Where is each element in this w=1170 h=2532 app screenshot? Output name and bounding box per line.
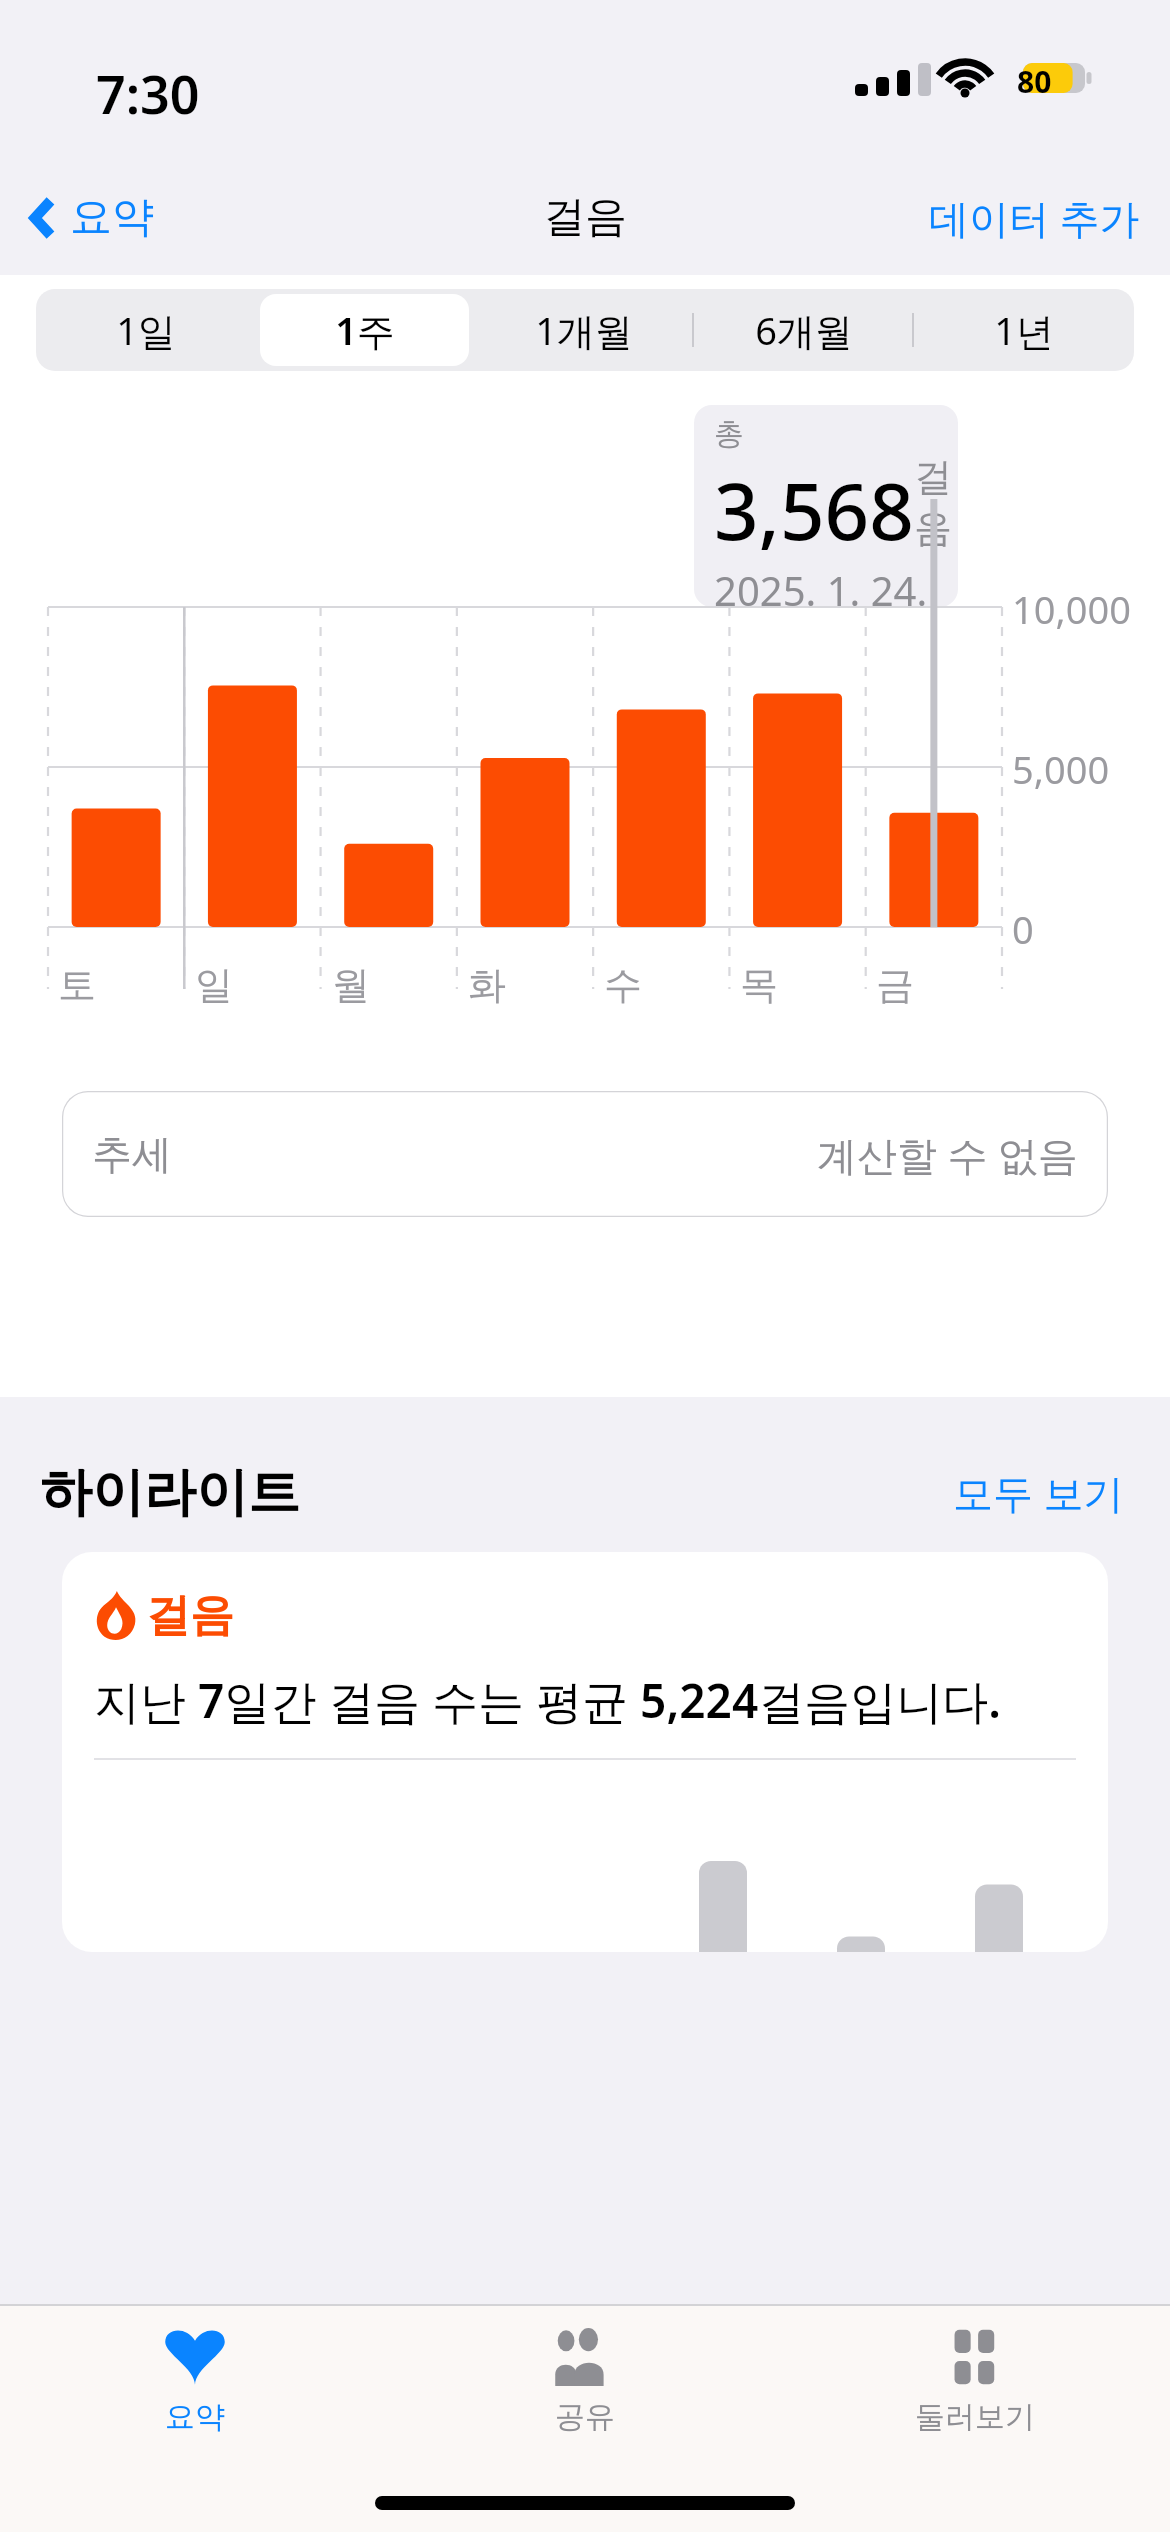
staticText: 토: [58, 961, 96, 1009]
staticText: 데이터 추가: [929, 190, 1140, 245]
staticText: 1개월: [535, 304, 633, 356]
button[interactable]: 1개월: [474, 289, 694, 371]
staticText: 금: [876, 961, 914, 1009]
staticText: 1년: [994, 304, 1054, 356]
staticText: 2025. 1. 24.: [714, 563, 928, 607]
button[interactable]: 요약: [18, 181, 162, 254]
staticText: 총: [714, 415, 744, 453]
staticText: 걸음: [914, 453, 958, 553]
staticText: 계산할 수 없음: [817, 1127, 1078, 1182]
button[interactable]: 데이터 추가: [923, 184, 1146, 251]
button[interactable]: 1주: [255, 289, 474, 371]
staticText: 지난 7일간 걸음 수는 평균 5,224걸음입니다.: [94, 1669, 1001, 1732]
staticText: 80: [1017, 61, 1052, 102]
staticText: 7:30: [96, 58, 200, 129]
staticText: 월: [332, 961, 370, 1009]
staticText: 요약: [70, 191, 154, 244]
button[interactable]: 1년: [914, 289, 1134, 371]
staticText: 0: [1012, 903, 1034, 955]
staticText: 화: [468, 961, 506, 1009]
staticText: 공유: [555, 2398, 615, 2436]
staticText: 걸음: [146, 1588, 234, 1643]
staticText: 6개월: [755, 304, 853, 356]
staticText: 1주: [335, 304, 395, 356]
button[interactable]: 추세: [62, 1091, 1108, 1217]
button[interactable]: 요약: [0, 2306, 390, 2456]
button[interactable]: 1일: [36, 289, 255, 371]
staticText: 요약: [165, 2398, 225, 2436]
staticText: 둘러보기: [915, 2398, 1035, 2436]
staticText: 하이라이트: [40, 1460, 300, 1526]
button[interactable]: 공유: [390, 2306, 780, 2456]
button[interactable]: 모두 보기: [947, 1459, 1130, 1526]
staticText: 걸음: [543, 191, 627, 244]
staticText: 모두 보기: [953, 1465, 1124, 1520]
staticText: 10,000: [1012, 583, 1131, 635]
button[interactable]: 걸음: [62, 1552, 1108, 1952]
staticText: 목: [740, 961, 778, 1009]
staticText: 추세: [92, 1129, 172, 1179]
staticText: 수: [604, 961, 642, 1009]
staticText: 5,000: [1012, 743, 1110, 795]
staticText: 3,568: [714, 457, 914, 563]
button[interactable]: 6개월: [694, 289, 914, 371]
staticText: 1일: [116, 304, 176, 356]
staticText: 일: [195, 961, 233, 1009]
button[interactable]: 둘러보기: [780, 2306, 1170, 2456]
